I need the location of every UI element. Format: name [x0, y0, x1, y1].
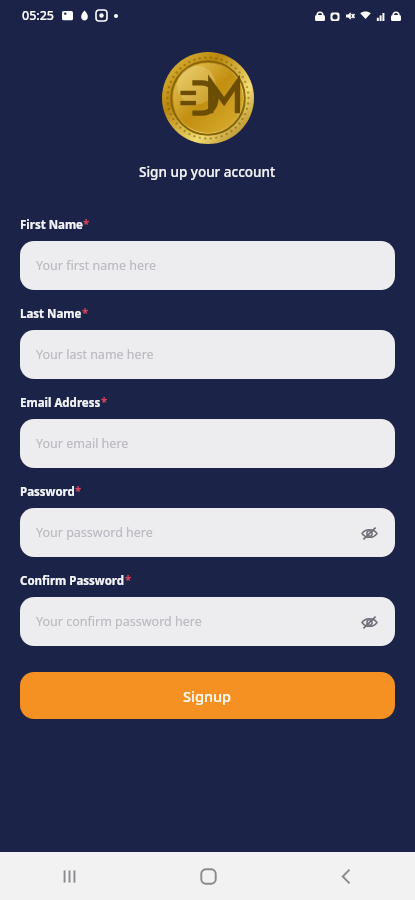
staticText: Last Name	[20, 306, 82, 322]
button[interactable]: Signup	[20, 672, 395, 719]
staticText: Password	[20, 484, 75, 500]
staticText: *	[101, 395, 108, 411]
staticText: *	[75, 484, 82, 500]
staticText: Your last name here	[36, 346, 154, 363]
button[interactable]: Your confirm password here	[20, 597, 395, 646]
staticText: 05:25	[22, 7, 55, 24]
button[interactable]: Home	[139, 852, 277, 900]
staticText: Your confirm password here	[36, 613, 202, 630]
staticText: *	[125, 573, 132, 589]
staticText: First Name	[20, 217, 83, 233]
button[interactable]: Your first name here	[20, 241, 395, 290]
staticText: *	[83, 217, 90, 233]
button[interactable]: Recents	[0, 852, 139, 900]
button[interactable]: Back	[277, 852, 415, 900]
button[interactable]: Show password	[356, 520, 382, 546]
button[interactable]: Your password here	[20, 508, 395, 557]
staticText: Confirm Password	[20, 573, 125, 589]
button[interactable]: Your email here	[20, 419, 395, 468]
button[interactable]: Show password	[356, 609, 382, 635]
staticText: Email Address	[20, 395, 101, 411]
staticText: *	[82, 306, 89, 322]
staticText: Your password here	[36, 524, 153, 541]
staticText: Signup	[183, 686, 232, 706]
staticText: Sign up your account	[139, 163, 276, 181]
staticText: Your first name here	[36, 257, 157, 274]
staticText: Your email here	[36, 435, 129, 452]
button[interactable]: Your last name here	[20, 330, 395, 379]
